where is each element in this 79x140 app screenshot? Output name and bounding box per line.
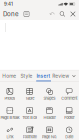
button[interactable]: Search	[57, 8, 68, 20]
button[interactable]: Undo	[47, 8, 57, 20]
staticText: Header	[43, 115, 55, 120]
staticText: Text Box	[22, 115, 37, 120]
button[interactable]: Home	[1, 70, 18, 81]
button[interactable]: Link	[0, 121, 20, 140]
button[interactable]: Review	[52, 70, 69, 81]
staticText: Footnote	[23, 135, 37, 139]
staticText: Footer	[64, 115, 74, 120]
button[interactable]: Page Break	[0, 101, 20, 121]
button[interactable]: Header	[39, 101, 59, 121]
staticText: Shapes	[43, 96, 55, 101]
staticText: Page Break	[0, 115, 19, 120]
button[interactable]: Style	[18, 70, 35, 81]
button[interactable]: Close	[68, 8, 79, 20]
button[interactable]: Footnote	[20, 121, 40, 140]
staticText: Review	[52, 73, 69, 79]
button[interactable]: Table	[20, 82, 40, 101]
staticText: Link	[6, 135, 13, 139]
staticText: Table	[25, 96, 34, 101]
staticText: Date	[65, 135, 73, 139]
staticText: Insert	[37, 73, 51, 79]
button[interactable]: Done	[0, 8, 22, 20]
button[interactable]: Footer	[59, 101, 79, 121]
staticText: Home	[2, 73, 16, 79]
staticText: Done	[3, 10, 19, 18]
staticText: Comment	[61, 96, 77, 101]
button[interactable]: Collapse ribbon	[69, 70, 78, 81]
button[interactable]: Insert	[35, 70, 52, 81]
button[interactable]: Comment	[59, 82, 79, 101]
button[interactable]: Photos	[0, 82, 20, 101]
button[interactable]: File actions	[22, 8, 31, 20]
staticText: Photos	[4, 96, 15, 101]
button[interactable]: Text Box	[20, 101, 40, 121]
staticText: Page No.	[42, 135, 57, 139]
staticText: 9:41	[4, 1, 13, 7]
button[interactable]: Shapes	[39, 82, 59, 101]
button[interactable]: Page No.	[39, 121, 59, 140]
button[interactable]: Date	[59, 121, 79, 140]
staticText: Style	[20, 73, 32, 79]
